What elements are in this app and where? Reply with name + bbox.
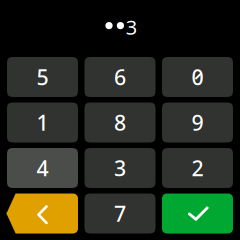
staticText: 1 <box>36 108 48 137</box>
button[interactable]: 2 <box>162 148 233 188</box>
staticText: 2 <box>191 154 203 182</box>
staticText: 9 <box>191 108 203 137</box>
staticText: 5 <box>36 63 48 91</box>
button[interactable]: 0 <box>162 57 233 97</box>
staticText: 3 <box>114 154 126 182</box>
button[interactable]: 5 <box>7 57 78 97</box>
button[interactable]: Delete <box>7 193 78 233</box>
staticText: 7 <box>114 199 126 228</box>
button[interactable]: 8 <box>84 102 155 142</box>
staticText: 0 <box>191 63 203 91</box>
button[interactable]: 1 <box>7 102 78 142</box>
button[interactable]: Confirm <box>162 193 233 233</box>
staticText: 8 <box>114 108 126 137</box>
button[interactable]: 6 <box>84 57 155 97</box>
button[interactable]: 7 <box>84 193 155 233</box>
button[interactable]: 3 <box>84 148 155 188</box>
staticText: 4 <box>36 154 48 182</box>
button[interactable]: 4 <box>7 148 78 188</box>
button[interactable]: 9 <box>162 102 233 142</box>
staticText: 3 <box>126 14 137 40</box>
staticText: 6 <box>114 63 126 91</box>
